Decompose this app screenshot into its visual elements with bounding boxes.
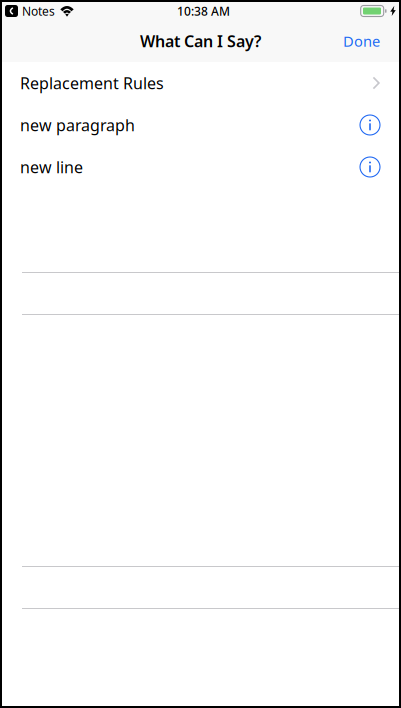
button[interactable]: About “new paragraph”: [360, 115, 380, 135]
staticText: Notes: [22, 3, 55, 19]
staticText: new paragraph: [20, 114, 135, 136]
button[interactable]: new line: [2, 146, 399, 188]
staticText: Done: [343, 31, 380, 51]
button[interactable]: Notes: [2, 3, 55, 19]
button[interactable]: Replacement Rules: [2, 62, 399, 104]
staticText: 10:38 AM: [177, 3, 230, 19]
staticText: new line: [20, 156, 83, 178]
staticText: Replacement Rules: [20, 72, 164, 94]
button[interactable]: Done: [327, 22, 399, 60]
button[interactable]: About “new line”: [360, 157, 380, 177]
button[interactable]: new paragraph: [2, 104, 399, 146]
staticText: What Can I Say?: [140, 30, 261, 52]
